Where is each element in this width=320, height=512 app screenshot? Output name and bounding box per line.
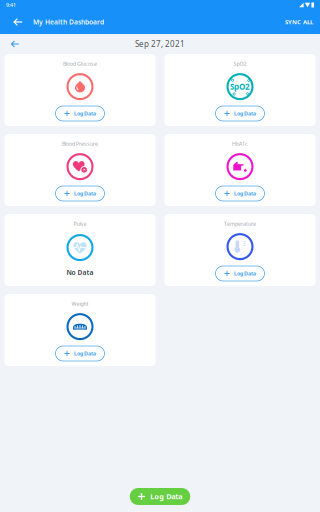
staticText: Log Data: [74, 110, 96, 117]
staticText: My Health Dashboard: [33, 17, 104, 27]
staticText: Blood Pressure: [62, 140, 98, 147]
staticText: Weight: [71, 300, 88, 307]
staticText: Log Data: [234, 110, 256, 117]
button[interactable]: Log Data: [215, 186, 264, 201]
button[interactable]: Log Data: [130, 488, 190, 505]
staticText: Log Data: [74, 350, 96, 357]
staticText: No Data: [66, 268, 93, 277]
staticText: Pulse: [73, 220, 86, 227]
staticText: SYNC ALL: [285, 18, 313, 26]
button[interactable]: Log Data: [55, 186, 104, 201]
button[interactable]: Back: [3, 10, 33, 34]
button[interactable]: Log Data: [215, 266, 264, 281]
staticText: Log Data: [234, 270, 256, 277]
button[interactable]: Previous day: [4, 34, 26, 54]
staticText: Log Data: [150, 491, 182, 501]
staticText: Log Data: [234, 190, 256, 197]
button[interactable]: Log Data: [55, 346, 104, 361]
staticText: Log Data: [74, 190, 96, 197]
button[interactable]: SYNC ALL: [278, 10, 320, 34]
staticText: SpO2: [230, 81, 250, 92]
button[interactable]: Log Data: [55, 106, 104, 121]
staticText: Sep 27, 2021: [135, 39, 185, 49]
button[interactable]: Log Data: [215, 106, 264, 121]
staticText: HbA1c: [232, 140, 248, 147]
staticText: 9:41: [6, 1, 16, 9]
staticText: SpO2: [233, 60, 246, 67]
staticText: Temperature: [224, 220, 256, 227]
staticText: Blood Glucose: [63, 60, 97, 67]
